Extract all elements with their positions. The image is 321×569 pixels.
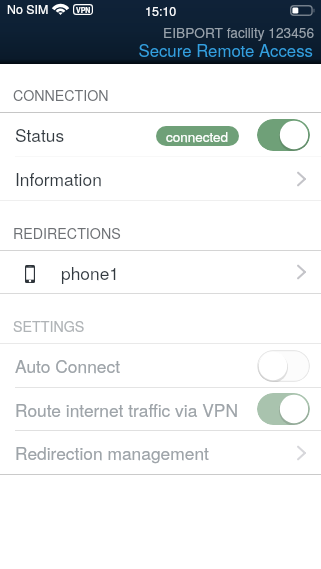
staticText: No SIM (7, 0, 49, 18)
staticText: VPN (76, 5, 91, 15)
other: Phone (25, 265, 35, 283)
staticText: Route internet traffic via VPN (15, 397, 238, 422)
button[interactable]: Toggle (257, 350, 310, 382)
staticText: Redirection management (15, 440, 209, 465)
button[interactable]: Toggle (257, 119, 310, 151)
staticText: EIBPORT facility 123456 (163, 22, 314, 42)
staticText: REDIRECTIONS (13, 223, 121, 243)
other: Open (297, 446, 306, 460)
staticText: Secure Remote Access (138, 38, 313, 62)
staticText: Auto Connect (15, 353, 121, 378)
other: Battery (290, 5, 315, 16)
button[interactable]: Auto Connect (0, 344, 321, 387)
button[interactable]: Redirection management (0, 431, 321, 474)
staticText: SETTINGS (13, 316, 85, 336)
staticText: CONNECTION (13, 85, 109, 105)
other: Open (297, 172, 306, 186)
button[interactable]: Phone (0, 251, 321, 293)
button[interactable]: Status (0, 113, 321, 156)
staticText: phone1 (61, 260, 120, 285)
button[interactable]: Toggle (257, 393, 310, 425)
staticText: Status (15, 122, 65, 147)
staticText: Information (15, 166, 102, 191)
staticText: connected (166, 127, 229, 146)
staticText: 15:10 (145, 2, 177, 20)
other: Wi-Fi (53, 4, 68, 15)
button[interactable]: Route internet traffic via VPN (0, 388, 321, 430)
other: Open (297, 265, 306, 279)
button[interactable]: Information (0, 157, 321, 200)
